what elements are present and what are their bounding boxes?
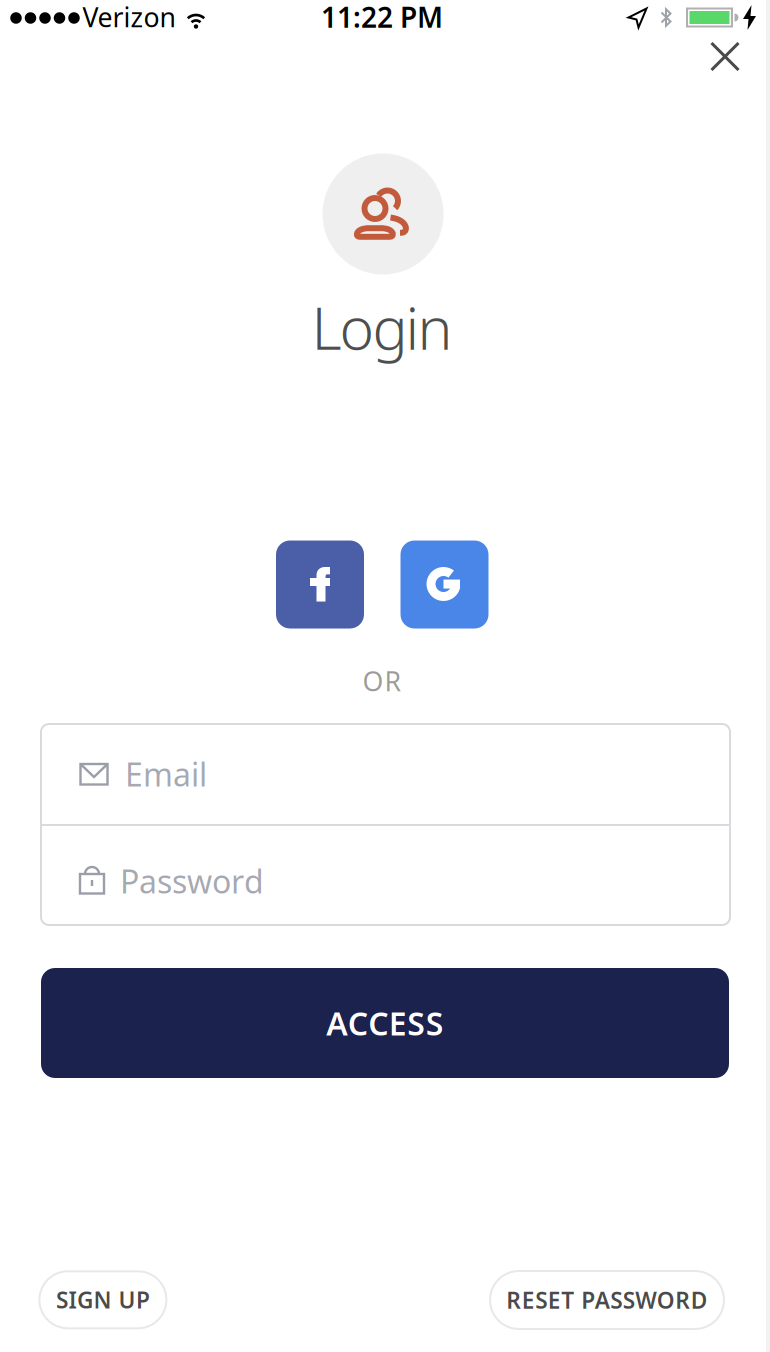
button[interactable]: RESET PASSWORD — [490, 1271, 724, 1329]
staticText: Verizon — [82, 0, 175, 35]
staticText: Email — [125, 753, 207, 795]
staticText: Login — [311, 288, 452, 366]
staticText: 11:22 PM — [321, 0, 443, 36]
button[interactable]: Password — [42, 826, 729, 924]
staticText: SIGN UP — [56, 1285, 150, 1315]
button[interactable]: SIGN UP — [39, 1271, 166, 1328]
staticText: Password — [120, 860, 264, 902]
button[interactable]: Close — [709, 41, 740, 72]
staticText: RESET PASSWORD — [506, 1285, 708, 1315]
button[interactable]: Email — [42, 725, 729, 823]
button[interactable]: Sign in with Facebook — [276, 540, 364, 628]
staticText: ACCESS — [326, 1002, 444, 1044]
button[interactable]: ACCESS — [41, 968, 729, 1078]
button[interactable]: Sign in with Google — [400, 540, 488, 628]
staticText: OR — [362, 663, 401, 699]
